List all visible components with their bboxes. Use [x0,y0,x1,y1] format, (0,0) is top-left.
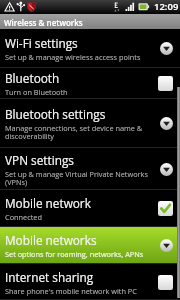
staticText: Set options for roaming, networks, APNs [5,249,144,259]
button[interactable]: Expand [160,239,173,252]
button[interactable]: Internet sharing [0,264,180,300]
staticText: 12:09 [154,0,179,13]
staticText: Connected [5,212,42,222]
staticText: Mobile networks [5,232,97,248]
button[interactable]: Enabled [158,201,173,216]
staticText: Internet sharing [5,269,94,285]
button[interactable]: Bluetooth [0,68,180,99]
button[interactable]: Disabled [158,275,173,290]
button[interactable]: Mobile network [0,190,180,227]
staticText: Turn on Bluetooth [5,87,68,97]
staticText: VPN settings [5,152,74,168]
button[interactable]: Expand [160,117,173,130]
staticText: Wireless & networks [4,17,83,28]
button[interactable]: Expand [160,42,173,55]
staticText: Manage connections, set device name & di… [5,123,160,141]
button[interactable]: Disabled [158,76,173,91]
button[interactable]: Bluetooth settings [0,99,180,148]
button[interactable]: Wi-Fi settings [0,29,180,68]
staticText: Set up & manage wireless access points [5,52,141,62]
staticText: Mobile network [5,195,91,211]
button[interactable]: Mobile networks [0,227,180,264]
staticText: Set up & manage Virtual Private Networks… [5,169,160,187]
button[interactable]: Expand [160,163,173,176]
staticText: Bluetooth settings [5,106,106,122]
button[interactable]: VPN settings [0,148,180,190]
staticText: Wi-Fi settings [5,35,78,51]
staticText: Bluetooth [5,70,60,86]
staticText: Share phone's mobile network with PC [5,286,137,296]
